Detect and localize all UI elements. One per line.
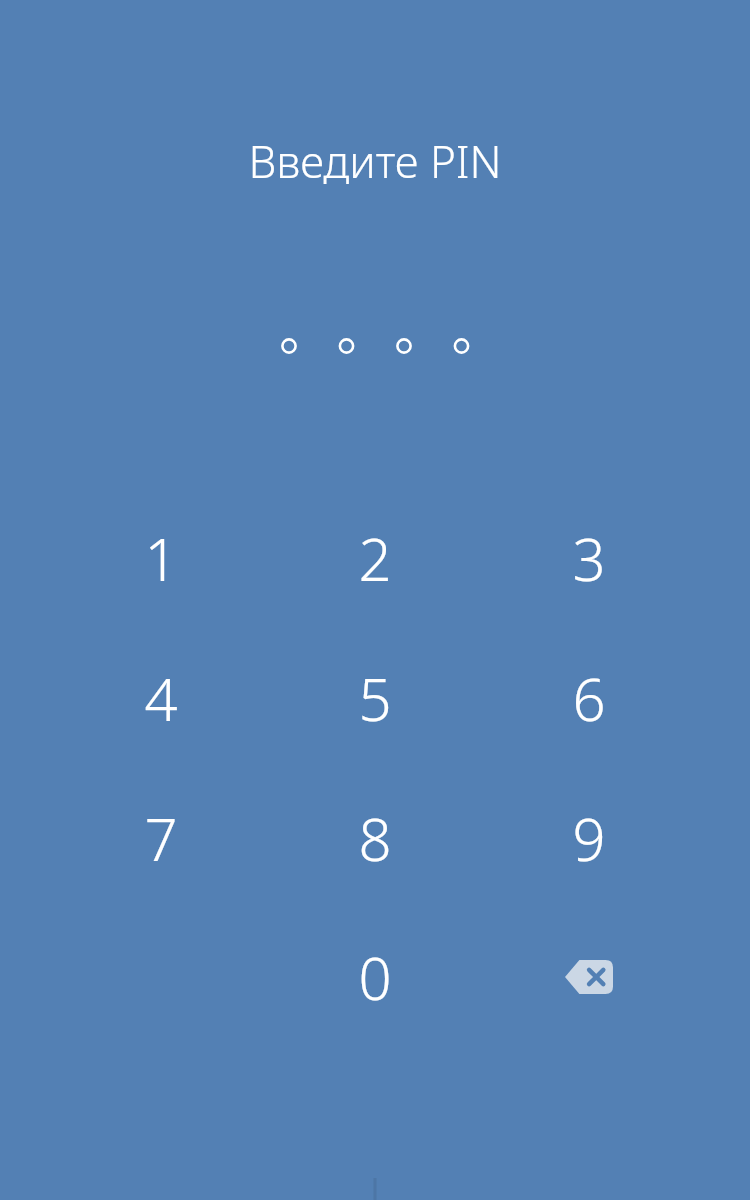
staticText: Введите PIN [248, 131, 502, 187]
staticText: 2 [358, 519, 392, 598]
button[interactable]: 7 [61, 773, 261, 903]
button[interactable]: Backspace [489, 912, 689, 1042]
staticText: 3 [572, 519, 606, 598]
button[interactable]: 9 [489, 773, 689, 903]
staticText: 5 [358, 659, 392, 738]
staticText: 4 [144, 659, 178, 738]
staticText: 7 [144, 799, 178, 878]
staticText: 1 [144, 519, 178, 598]
button[interactable]: 2 [275, 493, 475, 623]
staticText: 6 [572, 659, 606, 738]
staticText: 9 [572, 799, 606, 878]
button[interactable]: 4 [61, 633, 261, 763]
button[interactable]: 6 [489, 633, 689, 763]
staticText: 0 [358, 938, 392, 1017]
button[interactable]: 3 [489, 493, 689, 623]
button[interactable]: 1 [61, 493, 261, 623]
button[interactable]: 5 [275, 633, 475, 763]
button[interactable]: 0 [275, 912, 475, 1042]
button[interactable]: 8 [275, 773, 475, 903]
staticText: 8 [358, 799, 392, 878]
